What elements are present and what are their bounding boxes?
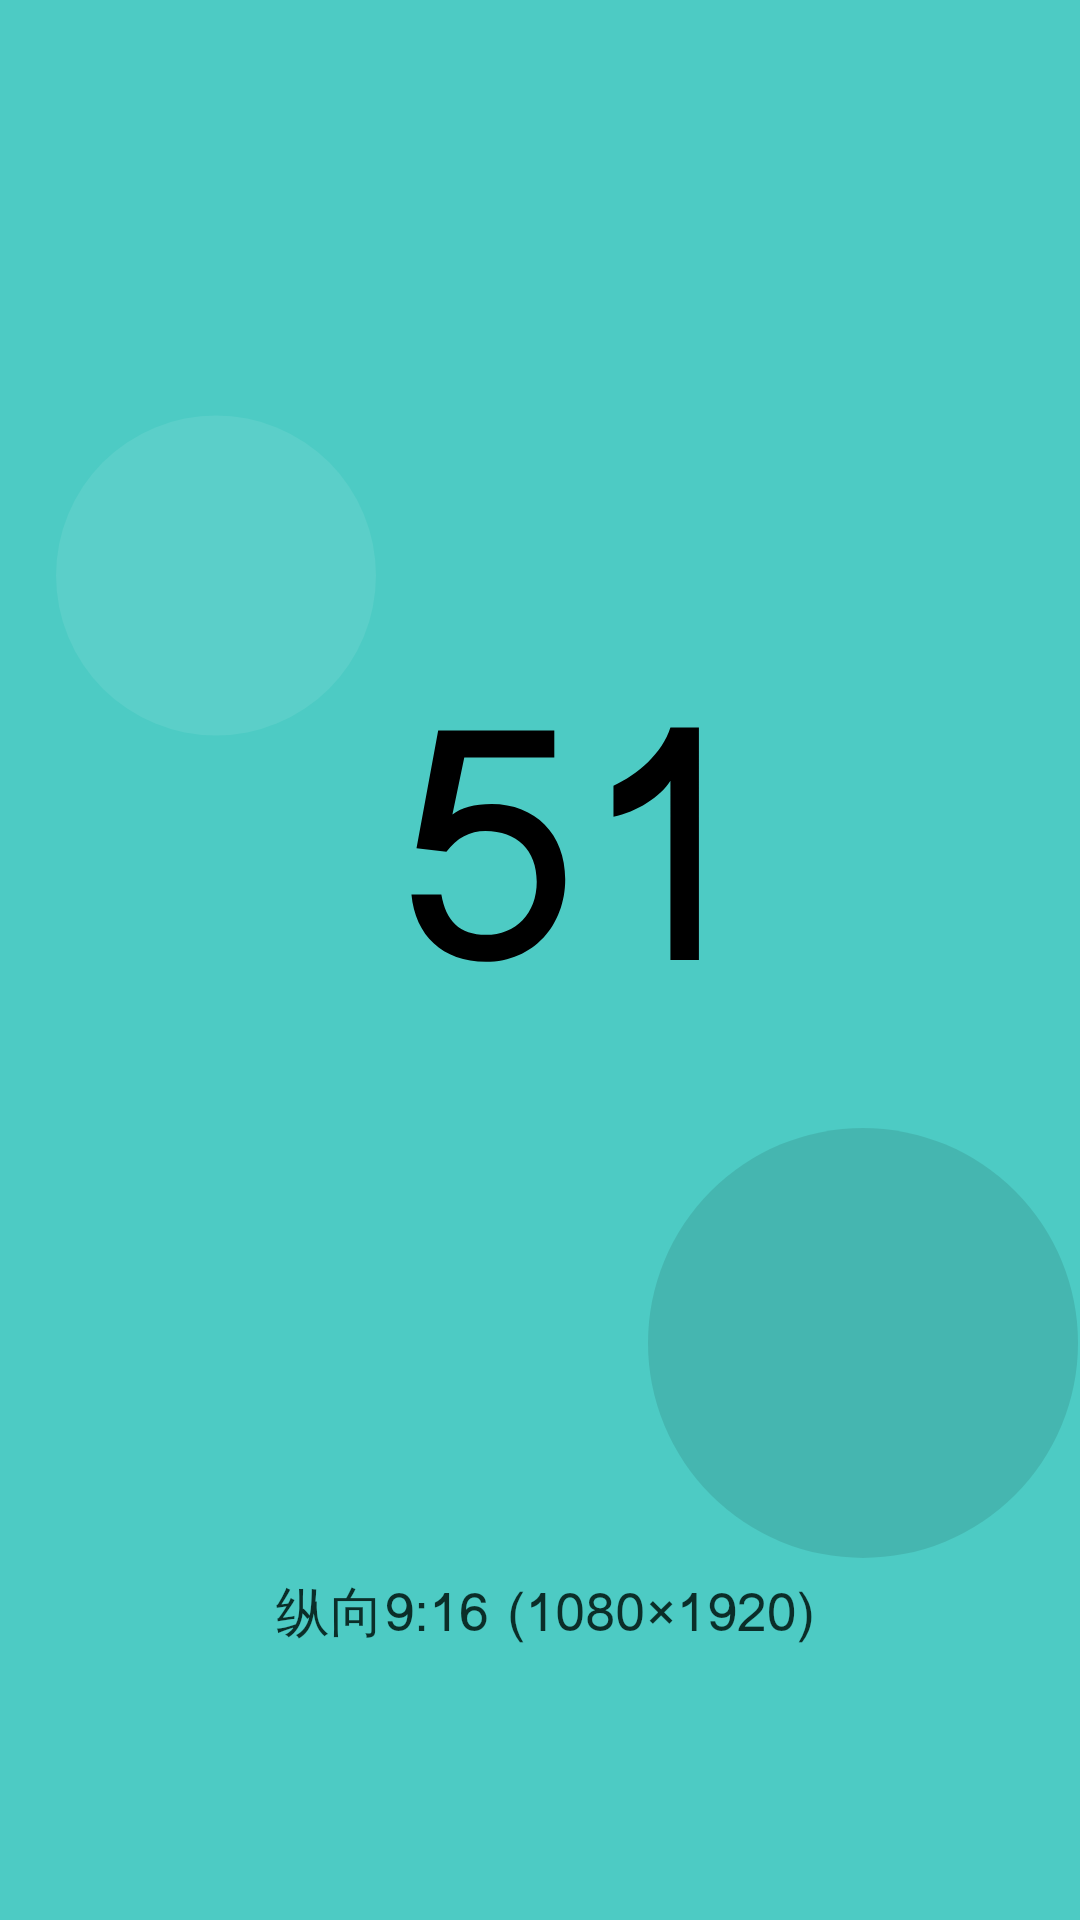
button[interactable]: Portrait 9:16 placeholder, slide 51 xyxy=(0,0,1080,1920)
